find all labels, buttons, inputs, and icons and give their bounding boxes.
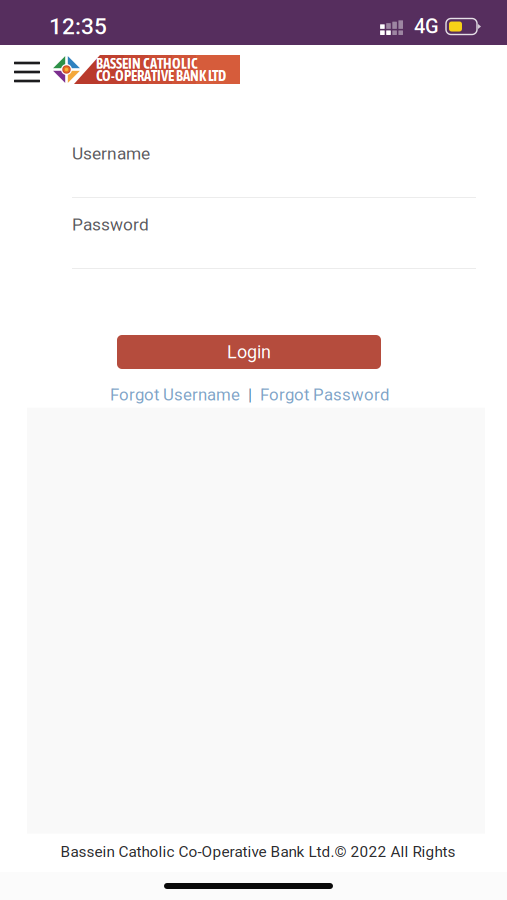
button[interactable]: Open menu bbox=[7, 50, 47, 94]
staticText: 12:35 bbox=[49, 13, 107, 40]
button[interactable]: Forgot Username bbox=[108, 385, 242, 405]
staticText: CO-OPERATIVE BANK LTD bbox=[96, 67, 226, 84]
staticText: Password bbox=[72, 214, 149, 235]
staticText: | bbox=[248, 385, 252, 405]
staticText: Login bbox=[227, 341, 271, 363]
staticText: Forgot Username bbox=[110, 385, 240, 405]
staticText: 4G bbox=[414, 15, 439, 38]
staticText: Username bbox=[72, 143, 150, 164]
staticText: BASSEIN CATHOLIC bbox=[96, 55, 198, 72]
button[interactable]: Forgot Password bbox=[258, 385, 391, 405]
button[interactable]: Login bbox=[117, 335, 381, 369]
staticText: Bassein Catholic Co-Operative Bank Ltd.©… bbox=[60, 843, 455, 861]
staticText: Forgot Password bbox=[260, 385, 389, 405]
